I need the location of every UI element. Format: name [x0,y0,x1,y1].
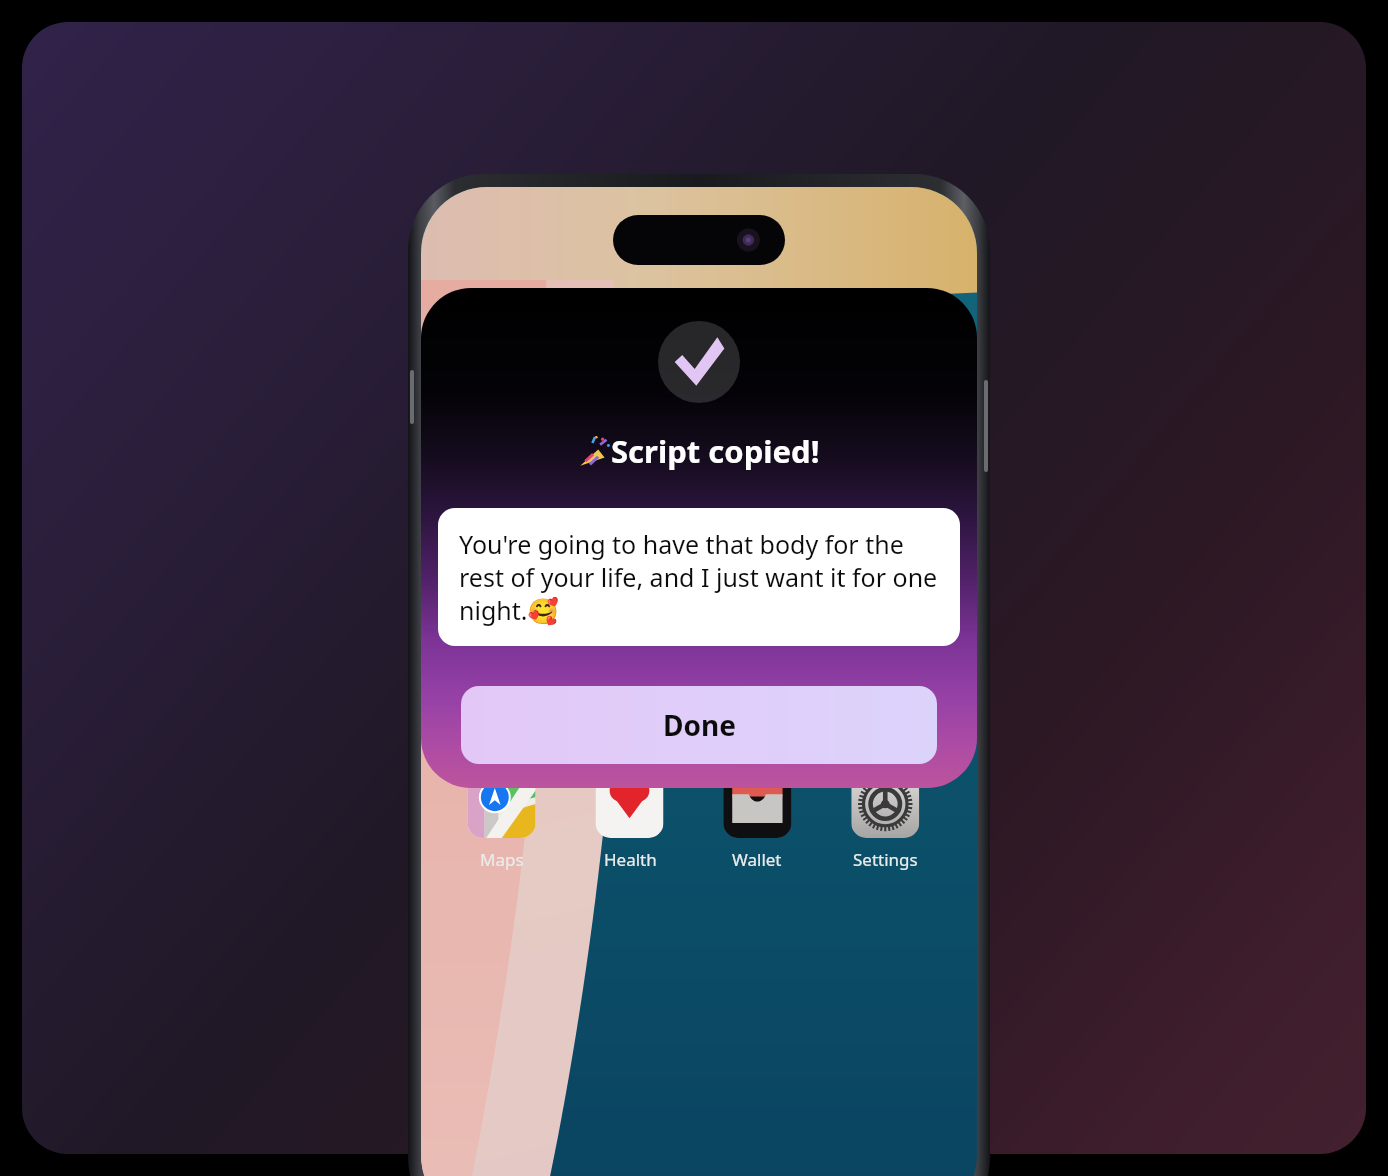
button[interactable]: Health [570,848,690,871]
button[interactable]: Wallet [697,848,817,871]
staticText: You're going to have that body for the r… [459,527,939,627]
staticText: Script copied! [611,430,820,472]
staticText: Maps [480,848,524,871]
staticText: Health [604,848,657,871]
button[interactable]: You're going to have that body for the r… [438,508,960,646]
button[interactable]: Maps [442,848,562,871]
staticText: Settings [853,848,918,871]
staticText: Wallet [732,848,782,871]
button[interactable]: Done [461,686,937,764]
button[interactable]: Settings [825,848,945,871]
other: Copied successfully [658,321,740,403]
staticText: Done [663,706,736,744]
